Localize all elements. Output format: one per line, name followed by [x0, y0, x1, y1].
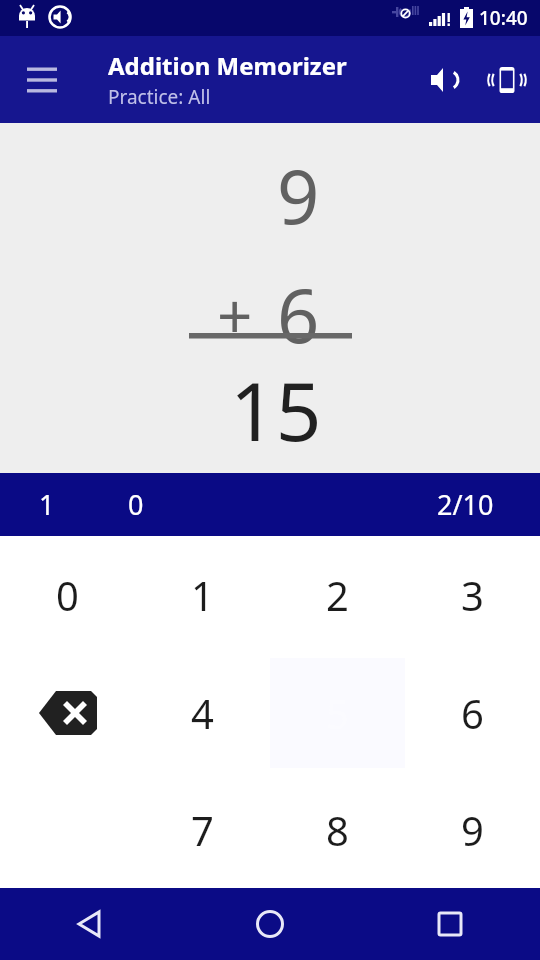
button[interactable]: 2 [270, 536, 405, 654]
staticText: 9 [461, 803, 484, 857]
staticText: 4 [191, 686, 214, 740]
staticText: 8 [326, 803, 349, 857]
button[interactable]: 4 [135, 654, 270, 771]
staticText: Addition Memorizer [108, 49, 347, 82]
button[interactable]: 0 [0, 536, 135, 654]
button[interactable]: Back [0, 888, 180, 960]
button[interactable]: 3 [405, 536, 540, 654]
staticText: + [217, 273, 253, 357]
staticText: 6 [461, 686, 484, 740]
staticText: 6 [277, 264, 320, 365]
staticText: 9 [277, 145, 320, 246]
staticText: 1 [191, 568, 214, 622]
staticText: 1 [39, 486, 55, 523]
button[interactable]: Home [180, 888, 360, 960]
staticText: 2/10 [437, 486, 494, 523]
button[interactable]: Open navigation menu [12, 50, 72, 110]
button[interactable]: 7 [135, 771, 270, 888]
button[interactable]: Backspace [0, 654, 135, 771]
staticText: 2 [326, 568, 349, 622]
button[interactable]: Recent apps [360, 888, 540, 960]
button[interactable]: 6 [405, 654, 540, 771]
button[interactable]: 8 [270, 771, 405, 888]
staticText: 15 [230, 355, 322, 464]
staticText: Practice: All [108, 84, 211, 110]
staticText: 7 [191, 803, 214, 857]
staticText: 0 [128, 486, 144, 523]
button[interactable]: 9 [405, 771, 540, 888]
button[interactable]: Toggle sound [414, 50, 474, 110]
button[interactable]: 1 [135, 536, 270, 654]
staticText: 3 [461, 568, 484, 622]
staticText: 10:40 [479, 5, 528, 31]
staticText: 0 [56, 568, 79, 622]
button[interactable]: Toggle vibration [480, 50, 534, 110]
